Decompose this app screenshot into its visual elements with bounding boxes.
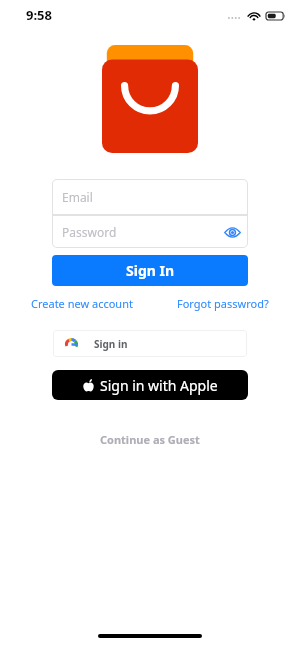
staticText: Create new account bbox=[31, 296, 133, 311]
button[interactable]: Sign in with Apple bbox=[52, 370, 248, 400]
button[interactable]: Email bbox=[52, 179, 248, 215]
button[interactable]: Show password bbox=[222, 222, 242, 242]
staticText: Continue as Guest bbox=[100, 432, 200, 447]
staticText: Sign In bbox=[126, 261, 175, 280]
staticText: 9:58 bbox=[26, 6, 52, 24]
button[interactable]: Password bbox=[52, 215, 248, 248]
staticText: Password bbox=[62, 224, 117, 240]
staticText: Email bbox=[62, 189, 93, 205]
button[interactable]: Create new account bbox=[31, 296, 133, 311]
staticText: Sign in bbox=[94, 337, 128, 351]
staticText: Forgot passwrod? bbox=[177, 296, 269, 311]
button[interactable]: Continue as Guest bbox=[94, 426, 206, 453]
button[interactable]: Sign in bbox=[53, 330, 247, 357]
button[interactable]: Sign In bbox=[52, 255, 248, 286]
staticText: Sign in with Apple bbox=[100, 376, 218, 395]
button[interactable]: Forgot passwrod? bbox=[177, 296, 269, 311]
